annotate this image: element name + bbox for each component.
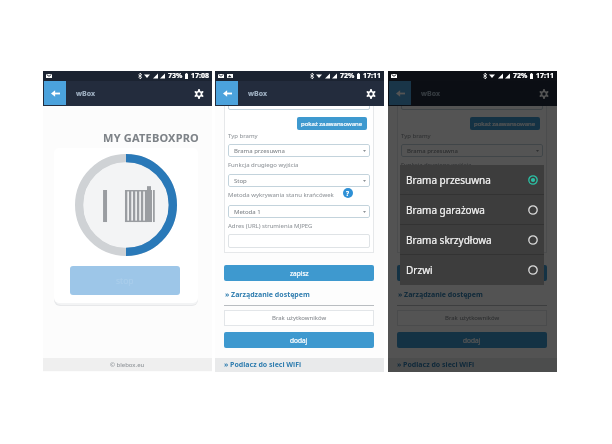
staticText: wBox [248, 89, 267, 99]
button[interactable]: Pomoc [343, 188, 353, 198]
button[interactable]: Brama skrzydłowa [400, 225, 544, 254]
button[interactable]: » Podlacz do sieci WiFi [388, 358, 557, 372]
button[interactable]: Back [44, 81, 66, 105]
staticText: » Podlacz do sieci WiFi [224, 360, 302, 370]
staticText: Funkcja drugiego wyjścia [228, 161, 299, 169]
staticText: Adres (URL) strumienia MJPEG [401, 222, 486, 230]
button[interactable]: dodaj [397, 332, 547, 348]
button[interactable]: Settings [190, 85, 208, 103]
button[interactable]: zapisz [397, 265, 547, 281]
staticText: Metoda 1 [234, 208, 261, 216]
button[interactable]: » Podlacz do sieci WiFi [215, 358, 384, 372]
button[interactable]: Drzwi [400, 255, 544, 284]
staticText: Adres (URL) strumienia MJPEG [228, 222, 313, 230]
staticText: 17:11 [536, 71, 554, 81]
button[interactable]: Settings [535, 85, 553, 103]
staticText: Brak użytkowników [272, 314, 327, 322]
staticText: 72% [513, 71, 528, 81]
button[interactable]: pokaż zaawansowane [297, 117, 367, 130]
button[interactable]: pokaż zaawansowane [470, 117, 540, 130]
staticText: ? [346, 189, 350, 198]
button[interactable] [401, 234, 543, 248]
button[interactable]: Brama garażowa [400, 195, 544, 224]
staticText: Typ bramy [228, 132, 258, 140]
staticText: 17:08 [191, 71, 209, 81]
staticText: » Podlacz do sieci WiFi [397, 360, 475, 370]
button[interactable]: Metoda 1 [228, 205, 370, 218]
staticText: Brama przesuwna [407, 147, 458, 155]
staticText: pokaż zaawansowane [301, 120, 363, 128]
staticText: 17:11 [363, 71, 381, 81]
staticText: Metoda wykrywania stanu krańcówek [228, 191, 334, 199]
staticText: Stop [407, 177, 420, 185]
staticText: » Zarządzanie dostępem [225, 290, 310, 300]
button[interactable] [228, 234, 370, 248]
staticText: ? [519, 189, 523, 198]
staticText: Brama skrzydłowa [406, 233, 492, 247]
staticText: Brak użytkowników [445, 314, 500, 322]
button[interactable]: Stop [228, 174, 370, 187]
button[interactable]: Brama przesuwna [228, 144, 370, 157]
button[interactable]: Metoda 1 [401, 205, 543, 218]
staticText: Drzwi [406, 263, 433, 277]
staticText: » Zarządzanie dostępem [398, 290, 483, 300]
button[interactable]: dodaj [224, 332, 374, 348]
staticText: 73% [168, 71, 183, 81]
button[interactable]: Settings [362, 85, 380, 103]
staticText: © blebox.eu [110, 361, 145, 369]
staticText: wBox [76, 89, 95, 99]
staticText: 17:11 [536, 71, 554, 81]
staticText: 72% [513, 71, 528, 81]
button[interactable]: zapisz [224, 265, 374, 281]
staticText: MY GATEBOXPRO [43, 130, 199, 145]
staticText: dodaj [463, 336, 481, 345]
staticText: dodaj [290, 336, 308, 345]
button[interactable]: Stop [401, 174, 543, 187]
button[interactable]: Back [389, 81, 411, 105]
button[interactable]: Back [216, 81, 238, 105]
button[interactable]: Brama przesuwna [400, 165, 544, 194]
staticText: Typ bramy [401, 132, 431, 140]
staticText: Brama przesuwna [406, 173, 491, 187]
staticText: Metoda 1 [407, 208, 434, 216]
staticText: Brama garażowa [406, 203, 485, 217]
button[interactable]: Brama przesuwna [401, 144, 543, 157]
staticText: pokaż zaawansowane [474, 120, 536, 128]
staticText: Metoda wykrywania stanu krańcówek [401, 191, 507, 199]
button[interactable]: stop [70, 266, 180, 295]
button[interactable]: Pomoc [516, 188, 526, 198]
staticText: stop [116, 275, 134, 287]
staticText: Brama przesuwna [234, 147, 285, 155]
staticText: wBox [421, 89, 440, 99]
staticText: Funkcja drugiego wyjścia [401, 161, 472, 169]
staticText: 72% [340, 71, 355, 81]
staticText: zapisz [290, 269, 309, 278]
staticText: Stop [234, 177, 247, 185]
